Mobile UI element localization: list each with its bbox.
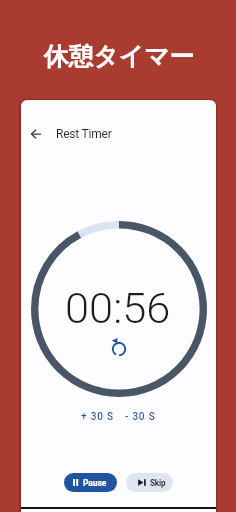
button[interactable]: + 30 S — [67, 410, 127, 424]
staticText: 休憩タイマー — [1, 41, 236, 72]
button[interactable] — [29, 127, 44, 142]
staticText: 00:56 — [65, 283, 171, 334]
button[interactable] — [109, 337, 129, 357]
staticText: - 30 S — [125, 411, 156, 423]
button[interactable]: Pause — [64, 473, 117, 492]
button[interactable]: Rest Timer — [56, 127, 112, 141]
button[interactable]: Skip — [126, 473, 173, 492]
staticText: Skip — [150, 478, 166, 488]
staticText: + 30 S — [81, 411, 114, 423]
button[interactable]: - 30 S — [110, 410, 170, 424]
staticText: Pause — [83, 478, 107, 488]
